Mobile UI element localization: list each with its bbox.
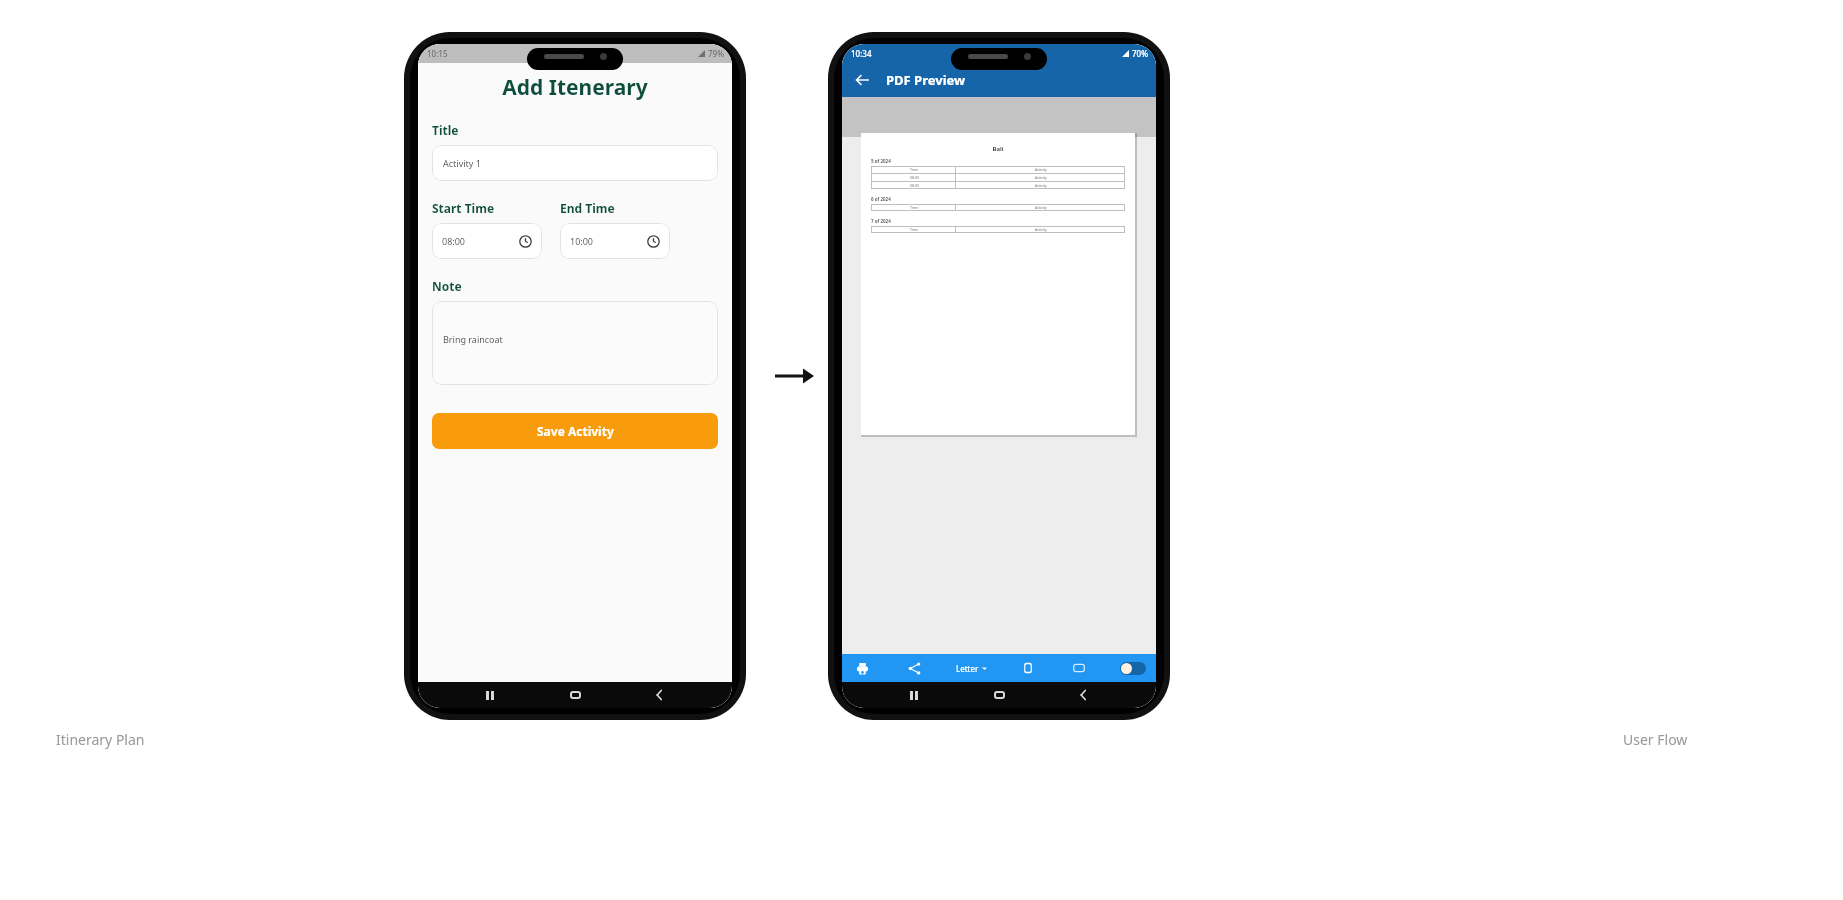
staticText: 10:34: [851, 48, 872, 59]
button[interactable]: Print: [852, 658, 872, 678]
button[interactable]: Bring raincoat: [432, 301, 718, 385]
staticText: Bring raincoat: [443, 333, 503, 345]
button[interactable]: Share: [904, 658, 924, 678]
button[interactable]: Recents: [901, 682, 927, 708]
staticText: Activity: [1035, 183, 1047, 188]
staticText: User Flow: [1623, 730, 1688, 749]
button[interactable]: Save Activity: [432, 413, 718, 449]
button[interactable]: Letter: [956, 663, 987, 674]
button[interactable]: 10:00: [560, 223, 670, 259]
staticText: Activity: [1035, 205, 1047, 210]
staticText: Itinerary Plan: [56, 730, 145, 749]
button[interactable]: Back: [647, 682, 673, 708]
staticText: 08:00: [442, 235, 466, 247]
staticText: 6 of 2024: [871, 196, 891, 202]
staticText: Letter: [956, 663, 979, 674]
staticText: Activity 1: [443, 157, 481, 169]
button[interactable]: Bali: [861, 133, 1135, 435]
staticText: Activity: [1035, 167, 1047, 172]
staticText: 08:00: [910, 175, 919, 180]
button[interactable]: Portrait: [1018, 658, 1038, 678]
button[interactable]: Landscape: [1069, 658, 1089, 678]
button[interactable]: Back: [1071, 682, 1097, 708]
staticText: 08:00: [910, 183, 919, 188]
staticText: End Time: [560, 200, 615, 216]
button[interactable]: Back: [852, 70, 872, 90]
staticText: Activity: [1035, 227, 1047, 232]
staticText: 5 of 2024: [871, 158, 891, 164]
staticText: Time: [910, 167, 919, 172]
staticText: 10:00: [570, 235, 594, 247]
staticText: Note: [432, 278, 462, 294]
staticText: Activity: [1035, 175, 1047, 180]
staticText: 79%: [708, 48, 724, 59]
button[interactable]: Recents: [477, 682, 503, 708]
staticText: Add Itenerary: [432, 73, 718, 102]
button[interactable]: Activity 1: [432, 145, 718, 181]
staticText: Save Activity: [537, 423, 614, 439]
button[interactable]: Home: [986, 682, 1012, 708]
staticText: Time: [910, 205, 919, 210]
button[interactable]: Home: [562, 682, 588, 708]
button[interactable]: 08:00: [432, 223, 542, 259]
other: Pick time: [647, 235, 660, 248]
staticText: 7 of 2024: [871, 218, 891, 224]
staticText: Title: [432, 122, 459, 138]
staticText: PDF Preview: [886, 71, 966, 89]
button[interactable]: Toggle color: [1120, 662, 1146, 675]
other: Pick time: [519, 235, 532, 248]
staticText: 70%: [1132, 48, 1148, 59]
staticText: Start Time: [432, 200, 495, 216]
staticText: Bali: [871, 145, 1125, 153]
staticText: Time: [910, 227, 919, 232]
staticText: 10:15: [427, 48, 448, 59]
